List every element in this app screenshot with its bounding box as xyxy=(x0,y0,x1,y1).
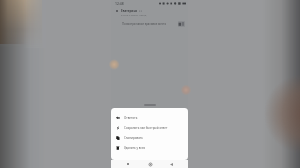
staticText: Посмотри какое красивое место xyxy=(122,22,178,26)
staticText: Екатерина xyxy=(121,9,138,13)
staticText: Скопировать xyxy=(124,136,143,140)
staticText: Сохранить как быстрый ответ xyxy=(124,126,168,130)
staticText: в сети 5 минут назад xyxy=(121,13,147,16)
button[interactable]: Back xyxy=(167,160,175,168)
button[interactable]: Удалить у всех xyxy=(111,143,188,153)
button[interactable]: Home xyxy=(146,160,154,168)
button[interactable]: Recents xyxy=(124,160,132,168)
button[interactable]: Сохранить как быстрый ответ xyxy=(111,123,188,133)
staticText: 12:48 xyxy=(115,1,124,6)
staticText: Удалить у всех xyxy=(124,146,146,150)
button[interactable]: Скопировать xyxy=(111,133,188,143)
staticText: Ответить xyxy=(124,116,138,120)
button[interactable]: Ответить xyxy=(111,113,188,123)
